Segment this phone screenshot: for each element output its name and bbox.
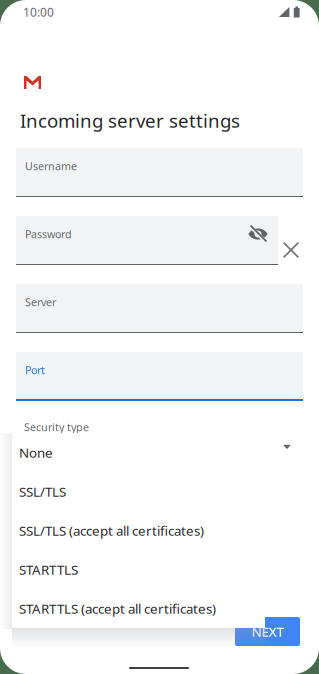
staticText: Password: [25, 227, 72, 241]
staticText: Username: [25, 159, 77, 173]
staticText: STARTTLS (accept all certificates): [19, 600, 216, 617]
staticText: Server: [25, 295, 56, 309]
button[interactable]: STARTTLS (accept all certificates): [12, 589, 265, 628]
button[interactable]: Username: [16, 148, 303, 197]
staticText: Port: [25, 363, 45, 377]
staticText: 10:00: [23, 4, 54, 20]
staticText: STARTTLS: [19, 561, 78, 578]
button[interactable]: NEXT: [235, 617, 300, 646]
staticText: Security type: [24, 420, 89, 434]
staticText: SSL/TLS: [19, 483, 66, 500]
staticText: Incoming server settings: [20, 108, 240, 133]
button[interactable]: None: [12, 433, 265, 472]
button[interactable]: SSL/TLS (accept all certificates): [12, 511, 265, 550]
button[interactable]: SSL/TLS: [12, 472, 265, 511]
button[interactable]: Show security types: [275, 437, 299, 457]
button[interactable]: Server: [16, 284, 303, 333]
button[interactable]: Password: [16, 216, 278, 265]
button[interactable]: STARTTLS: [12, 550, 265, 589]
staticText: NEXT: [251, 623, 283, 640]
staticText: None: [19, 444, 53, 461]
button[interactable]: Clear password: [276, 235, 306, 265]
staticText: SSL/TLS (accept all certificates): [19, 522, 204, 539]
button[interactable]: Port: [16, 352, 303, 401]
